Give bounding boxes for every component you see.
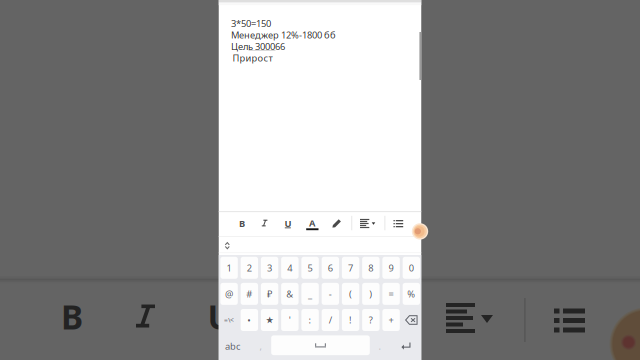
staticText: . bbox=[378, 340, 381, 352]
staticText: A bbox=[309, 217, 315, 229]
staticText: 0 bbox=[409, 262, 414, 274]
button[interactable]: _ bbox=[301, 283, 319, 305]
staticText: ) bbox=[369, 288, 372, 300]
button[interactable]: 2 bbox=[241, 257, 258, 279]
staticText: =\< bbox=[224, 316, 234, 324]
button[interactable]: : bbox=[301, 309, 319, 331]
staticText: U bbox=[207, 294, 232, 339]
button[interactable]: = bbox=[382, 283, 400, 305]
staticText: ₽ bbox=[267, 288, 272, 300]
button[interactable]: 3 bbox=[261, 257, 278, 279]
button[interactable]: ! bbox=[342, 309, 359, 331]
button[interactable]: / bbox=[322, 309, 339, 331]
staticText: U bbox=[284, 217, 291, 230]
staticText: @ bbox=[225, 288, 233, 300]
staticText: 5 bbox=[308, 262, 313, 274]
staticText: + bbox=[389, 314, 394, 326]
staticText: ! bbox=[349, 314, 352, 326]
button[interactable]: 8 bbox=[362, 257, 379, 279]
staticText: 9 bbox=[389, 262, 394, 274]
button[interactable]: 9 bbox=[382, 257, 400, 279]
staticText: • bbox=[247, 314, 251, 326]
staticText: Менеджер 12%-1800 бб bbox=[231, 29, 336, 41]
staticText: 3*50=150 bbox=[231, 17, 271, 30]
staticText: 7 bbox=[348, 262, 353, 274]
button[interactable]: @ bbox=[220, 283, 238, 305]
button[interactable]: 5 bbox=[301, 257, 319, 279]
button[interactable]: ₽ bbox=[261, 283, 278, 305]
button[interactable]: & bbox=[281, 283, 298, 305]
button[interactable]: % bbox=[403, 283, 420, 305]
staticText: , bbox=[259, 340, 262, 352]
button[interactable]: 7 bbox=[342, 257, 359, 279]
button[interactable]: + bbox=[382, 309, 400, 331]
staticText: 3 bbox=[267, 262, 272, 274]
staticText: & bbox=[286, 288, 293, 300]
staticText: - bbox=[329, 288, 332, 300]
button[interactable]: 0 bbox=[403, 257, 420, 279]
staticText: ★ bbox=[266, 315, 274, 325]
staticText: : bbox=[309, 314, 312, 326]
staticText: = bbox=[389, 288, 394, 300]
button[interactable]: # bbox=[241, 283, 258, 305]
staticText: 1 bbox=[227, 262, 232, 274]
staticText: abc bbox=[225, 340, 240, 352]
button[interactable]: ? bbox=[362, 309, 379, 331]
staticText: / bbox=[329, 314, 332, 326]
staticText: ' bbox=[289, 314, 291, 326]
staticText: 8 bbox=[368, 262, 373, 274]
staticText: B bbox=[61, 294, 83, 339]
staticText: 2 bbox=[247, 262, 252, 274]
staticText: Цель 300066 bbox=[231, 40, 285, 53]
staticText: ? bbox=[369, 314, 373, 326]
staticText: 6 bbox=[328, 262, 333, 274]
button[interactable]: 6 bbox=[322, 257, 339, 279]
button[interactable]: ) bbox=[362, 283, 379, 305]
button[interactable]: ( bbox=[342, 283, 359, 305]
staticText: B bbox=[239, 217, 245, 230]
button[interactable]: 1 bbox=[220, 257, 238, 279]
staticText: ( bbox=[349, 288, 352, 300]
staticText: Прирост bbox=[233, 52, 273, 64]
staticText: _ bbox=[308, 288, 312, 300]
button[interactable]: ★ bbox=[261, 309, 278, 331]
staticText: 4 bbox=[287, 262, 292, 274]
button[interactable]: • bbox=[241, 309, 258, 331]
button[interactable]: ' bbox=[281, 309, 298, 331]
button[interactable]: - bbox=[322, 283, 339, 305]
staticText: % bbox=[407, 288, 415, 300]
button[interactable]: 4 bbox=[281, 257, 298, 279]
staticText: # bbox=[246, 288, 252, 300]
